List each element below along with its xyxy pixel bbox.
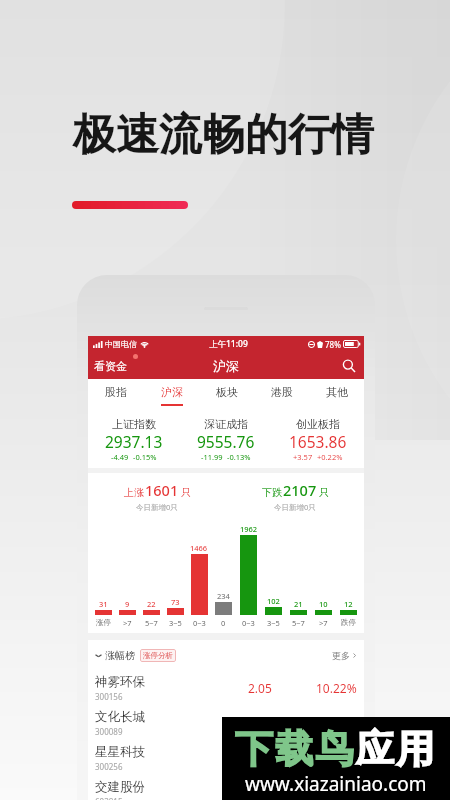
staticText: 星星科技: [95, 744, 145, 760]
button[interactable]: 涨停分析: [140, 649, 176, 662]
staticText: 5~7: [145, 618, 158, 628]
staticText: 603815: [95, 796, 123, 800]
button[interactable]: 板块: [199, 379, 254, 406]
button[interactable]: 交建股份: [88, 775, 364, 800]
staticText: >7: [319, 618, 328, 628]
staticText: 300256: [95, 761, 123, 772]
staticText: 3~5: [267, 618, 280, 628]
staticText: 300156: [95, 691, 123, 702]
staticText: 创业板指: [296, 417, 340, 431]
staticText: -0.15%: [133, 452, 157, 462]
staticText: 下载鸟: [235, 725, 356, 773]
staticText: 下跌: [262, 486, 282, 499]
staticText: 78%: [325, 339, 341, 350]
staticText: 22: [147, 599, 156, 609]
staticText: 涨停: [96, 618, 111, 627]
button[interactable]: 其他: [309, 379, 364, 406]
staticText: 2937.13: [105, 431, 163, 452]
staticText: 应用: [356, 725, 437, 773]
button[interactable]: 创业板指: [272, 406, 364, 468]
staticText: 31: [99, 599, 108, 609]
button[interactable]: 股指: [88, 379, 144, 406]
staticText: 中国电信: [105, 339, 137, 349]
staticText: 极速流畅的行情: [73, 108, 374, 162]
staticText: 涨幅榜: [105, 649, 135, 662]
staticText: 其他: [326, 385, 348, 399]
staticText: 0~3: [242, 618, 255, 628]
button[interactable]: 港股: [254, 379, 309, 406]
staticText: 1962: [240, 524, 258, 534]
staticText: 港股: [271, 385, 293, 399]
staticText: -4.49: [111, 452, 129, 462]
staticText: 只: [319, 486, 329, 499]
staticText: 文化长城: [95, 709, 145, 725]
staticText: 9555.76: [197, 431, 255, 452]
staticText: 10.22%: [316, 680, 357, 696]
staticText: 今日新增0只: [136, 502, 178, 512]
staticText: 看资金: [94, 359, 127, 373]
staticText: 300089: [95, 726, 123, 737]
button[interactable]: 深证成指: [180, 406, 272, 468]
staticText: 9: [125, 599, 130, 609]
staticText: 上午11:09: [209, 338, 248, 350]
staticText: 12: [344, 599, 353, 609]
staticText: 234: [217, 591, 230, 601]
staticText: 2.05: [248, 680, 272, 696]
staticText: 沪深: [213, 358, 239, 374]
staticText: 3~5: [169, 618, 182, 628]
staticText: 今日新增0只: [274, 502, 316, 512]
staticText: 10: [319, 599, 328, 609]
staticText: 2107: [283, 480, 317, 500]
staticText: 只: [181, 486, 191, 499]
staticText: 神雾环保: [95, 674, 145, 690]
staticText: -11.99: [201, 452, 223, 462]
staticText: www.xiazainiao.com: [245, 771, 427, 797]
staticText: 1466: [190, 543, 208, 553]
button[interactable]: 星星科技: [88, 740, 364, 775]
button[interactable]: Search: [334, 353, 364, 379]
staticText: 深证成指: [204, 417, 248, 431]
staticText: 5~7: [292, 618, 305, 628]
button[interactable]: 沪深: [144, 379, 199, 406]
staticText: +3.57: [293, 452, 313, 462]
button[interactable]: 更多: [332, 650, 357, 661]
staticText: 涨停分析: [143, 651, 173, 660]
staticText: 21: [294, 599, 303, 609]
staticText: 交建股份: [95, 779, 145, 795]
staticText: 上证指数: [112, 417, 156, 431]
staticText: +0.22%: [317, 452, 343, 462]
staticText: 1601: [145, 480, 179, 500]
staticText: 0~3: [193, 618, 206, 628]
staticText: 102: [267, 596, 280, 606]
staticText: 上涨: [124, 486, 144, 499]
staticText: 板块: [216, 385, 238, 399]
staticText: 0: [221, 618, 226, 628]
staticText: 1653.86: [289, 431, 347, 452]
staticText: 跌停: [341, 618, 356, 627]
staticText: 沪深: [161, 385, 183, 399]
staticText: 股指: [105, 385, 127, 399]
staticText: 73: [171, 597, 180, 607]
button[interactable]: 文化长城: [88, 705, 364, 740]
staticText: >7: [123, 618, 132, 628]
button[interactable]: 神雾环保: [88, 670, 364, 705]
staticText: 更多: [332, 650, 350, 661]
button[interactable]: 上证指数: [88, 406, 180, 468]
staticText: -0.13%: [227, 452, 251, 462]
button[interactable]: 看资金: [88, 354, 145, 378]
